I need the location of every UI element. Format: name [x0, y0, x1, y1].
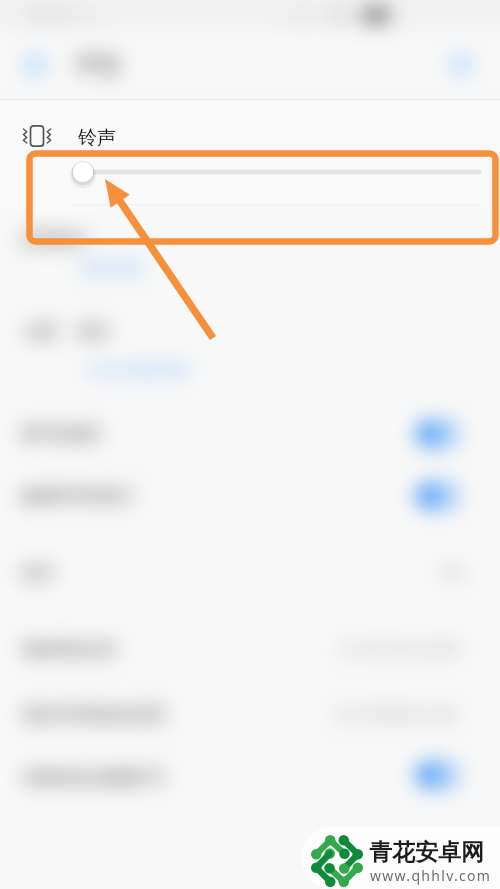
staticText: 青花安卓网 — [369, 838, 484, 867]
staticText: 拨号按键音 — [22, 424, 102, 444]
staticText: 更多声音和振动设置 — [22, 705, 166, 725]
button[interactable]: 通知和状态栏 — [22, 636, 118, 664]
button[interactable]: 来电时振动提醒开关 — [22, 764, 166, 792]
staticText: 仅允许闹钟响铃 — [86, 361, 191, 380]
button[interactable]: 媒体音量 — [82, 254, 142, 282]
button[interactable]: 铃声 — [22, 560, 54, 588]
button[interactable]: 拨号按键音 — [22, 420, 102, 448]
staticText: 通知和状态栏 — [22, 640, 118, 660]
staticText: 铃声 — [22, 564, 54, 584]
button[interactable]: 仅允许闹钟响铃 — [86, 356, 191, 384]
staticText: www.qhhlv.com — [370, 866, 492, 885]
button[interactable]: 更多声音和振动设置 — [22, 701, 166, 729]
button[interactable]: 触摸时震动提示 — [22, 482, 134, 510]
staticText: 触摸时震动提示 — [22, 486, 134, 506]
button[interactable]: Toggle — [416, 762, 458, 788]
button[interactable]: 情景模式 — [22, 226, 86, 254]
staticText: 来电时振动提醒开关 — [22, 768, 166, 788]
staticText: 情景模式 — [22, 230, 86, 250]
button[interactable]: Toggle — [416, 483, 458, 509]
button[interactable]: Back — [24, 54, 46, 76]
button[interactable]: Toggle — [416, 421, 458, 447]
button[interactable]: 勿扰 — [26, 318, 58, 346]
staticText: 铃声 — [78, 126, 116, 150]
button[interactable]: 静音 — [78, 318, 110, 346]
staticText: 静音 — [78, 322, 110, 342]
staticText: 声音 — [76, 51, 122, 80]
button[interactable]: Search — [450, 54, 472, 76]
staticText: 勿扰 — [26, 322, 58, 342]
